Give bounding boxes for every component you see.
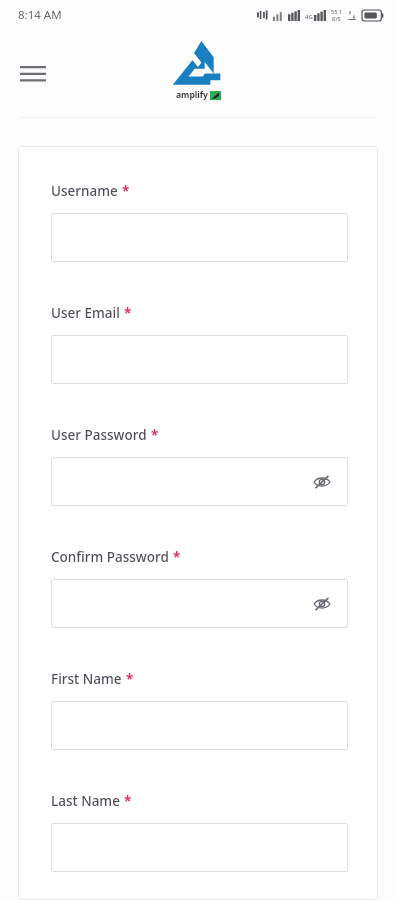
staticText: amplify: [176, 89, 208, 101]
button[interactable]: [51, 701, 348, 750]
staticText: 55.1: [331, 8, 342, 15]
staticText: Confirm Password: [51, 548, 169, 566]
staticText: First Name: [51, 670, 122, 688]
button[interactable]: Open navigation menu: [12, 54, 54, 94]
staticText: Last Name: [51, 792, 120, 810]
button[interactable]: Show password: [309, 591, 335, 617]
staticText: 4G: [305, 13, 313, 21]
staticText: *: [126, 670, 134, 688]
staticText: User Password: [51, 426, 147, 444]
button[interactable]: Show password: [51, 457, 348, 506]
staticText: 8:14 AM: [18, 7, 62, 23]
staticText: *: [124, 304, 132, 322]
button[interactable]: Show password: [51, 579, 348, 628]
button[interactable]: [51, 213, 348, 262]
staticText: *: [173, 548, 181, 566]
staticText: *: [151, 426, 159, 444]
staticText: *: [122, 182, 130, 200]
button[interactable]: Show password: [309, 469, 335, 495]
button[interactable]: [51, 335, 348, 384]
staticText: K/S: [332, 15, 341, 22]
button[interactable]: Amplify logo: [170, 40, 226, 101]
staticText: Username: [51, 182, 118, 200]
staticText: *: [124, 792, 132, 810]
button[interactable]: [51, 823, 348, 872]
staticText: User Email: [51, 304, 120, 322]
